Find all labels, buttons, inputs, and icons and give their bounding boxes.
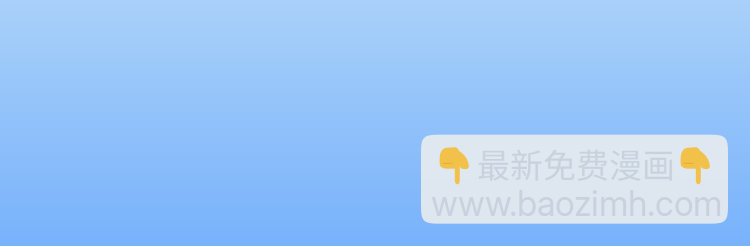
staticText: 最新免费漫画	[477, 140, 675, 187]
staticText: www.baozimh.com	[431, 183, 722, 224]
button[interactable]: 最新免费漫画 www.baozimh.com	[421, 135, 728, 224]
